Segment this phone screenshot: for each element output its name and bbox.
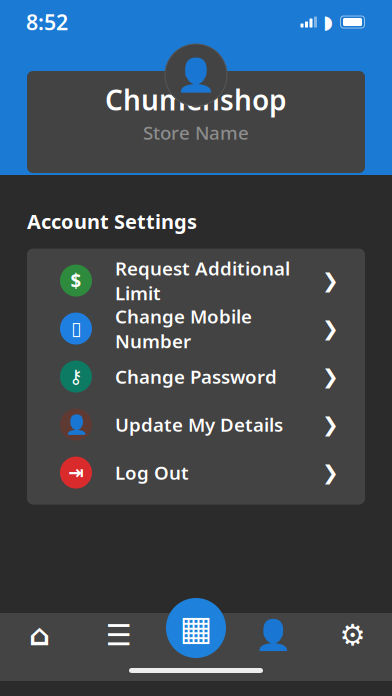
staticText: Request Additional Limit	[115, 256, 290, 305]
button[interactable]: $	[27, 257, 365, 305]
button[interactable]: ⚷	[27, 353, 365, 401]
button[interactable]: Home	[0, 613, 79, 657]
staticText: Log Out	[115, 460, 189, 485]
staticText: ❯	[322, 413, 339, 436]
staticText: ⇥	[68, 462, 84, 483]
staticText: 👤	[64, 414, 87, 435]
button[interactable]: Orders	[79, 613, 158, 657]
staticText: ▦	[179, 608, 212, 648]
staticText: ◗	[323, 11, 333, 33]
button[interactable]: ▯	[27, 305, 365, 353]
staticText: ⚷	[69, 366, 83, 387]
staticText: ❯	[322, 365, 339, 388]
button[interactable]: Scan QR code	[166, 598, 226, 658]
staticText: ▯	[71, 318, 81, 339]
staticText: ❯	[322, 269, 339, 292]
staticText: ☰	[105, 618, 131, 652]
staticText: ❯	[322, 317, 339, 340]
staticText: 👤	[255, 618, 292, 652]
staticText: ⚙	[339, 618, 365, 652]
staticText: ❯	[322, 461, 339, 484]
staticText: $	[70, 268, 81, 293]
staticText: 8:52	[26, 8, 68, 36]
staticText: Chumenshop	[105, 81, 287, 118]
staticText: Change Password	[115, 364, 277, 389]
staticText: Account Settings	[27, 208, 197, 235]
button[interactable]: 👤	[27, 401, 365, 449]
button[interactable]: Profile	[234, 613, 313, 657]
staticText: ⌂	[29, 618, 50, 652]
staticText: Update My Details	[115, 412, 283, 437]
button[interactable]: ⇥	[27, 449, 365, 497]
staticText: Change Mobile Number	[115, 304, 252, 353]
staticText: Store Name	[143, 120, 249, 145]
staticText: 👤	[176, 57, 216, 93]
button[interactable]: Settings	[313, 613, 392, 657]
